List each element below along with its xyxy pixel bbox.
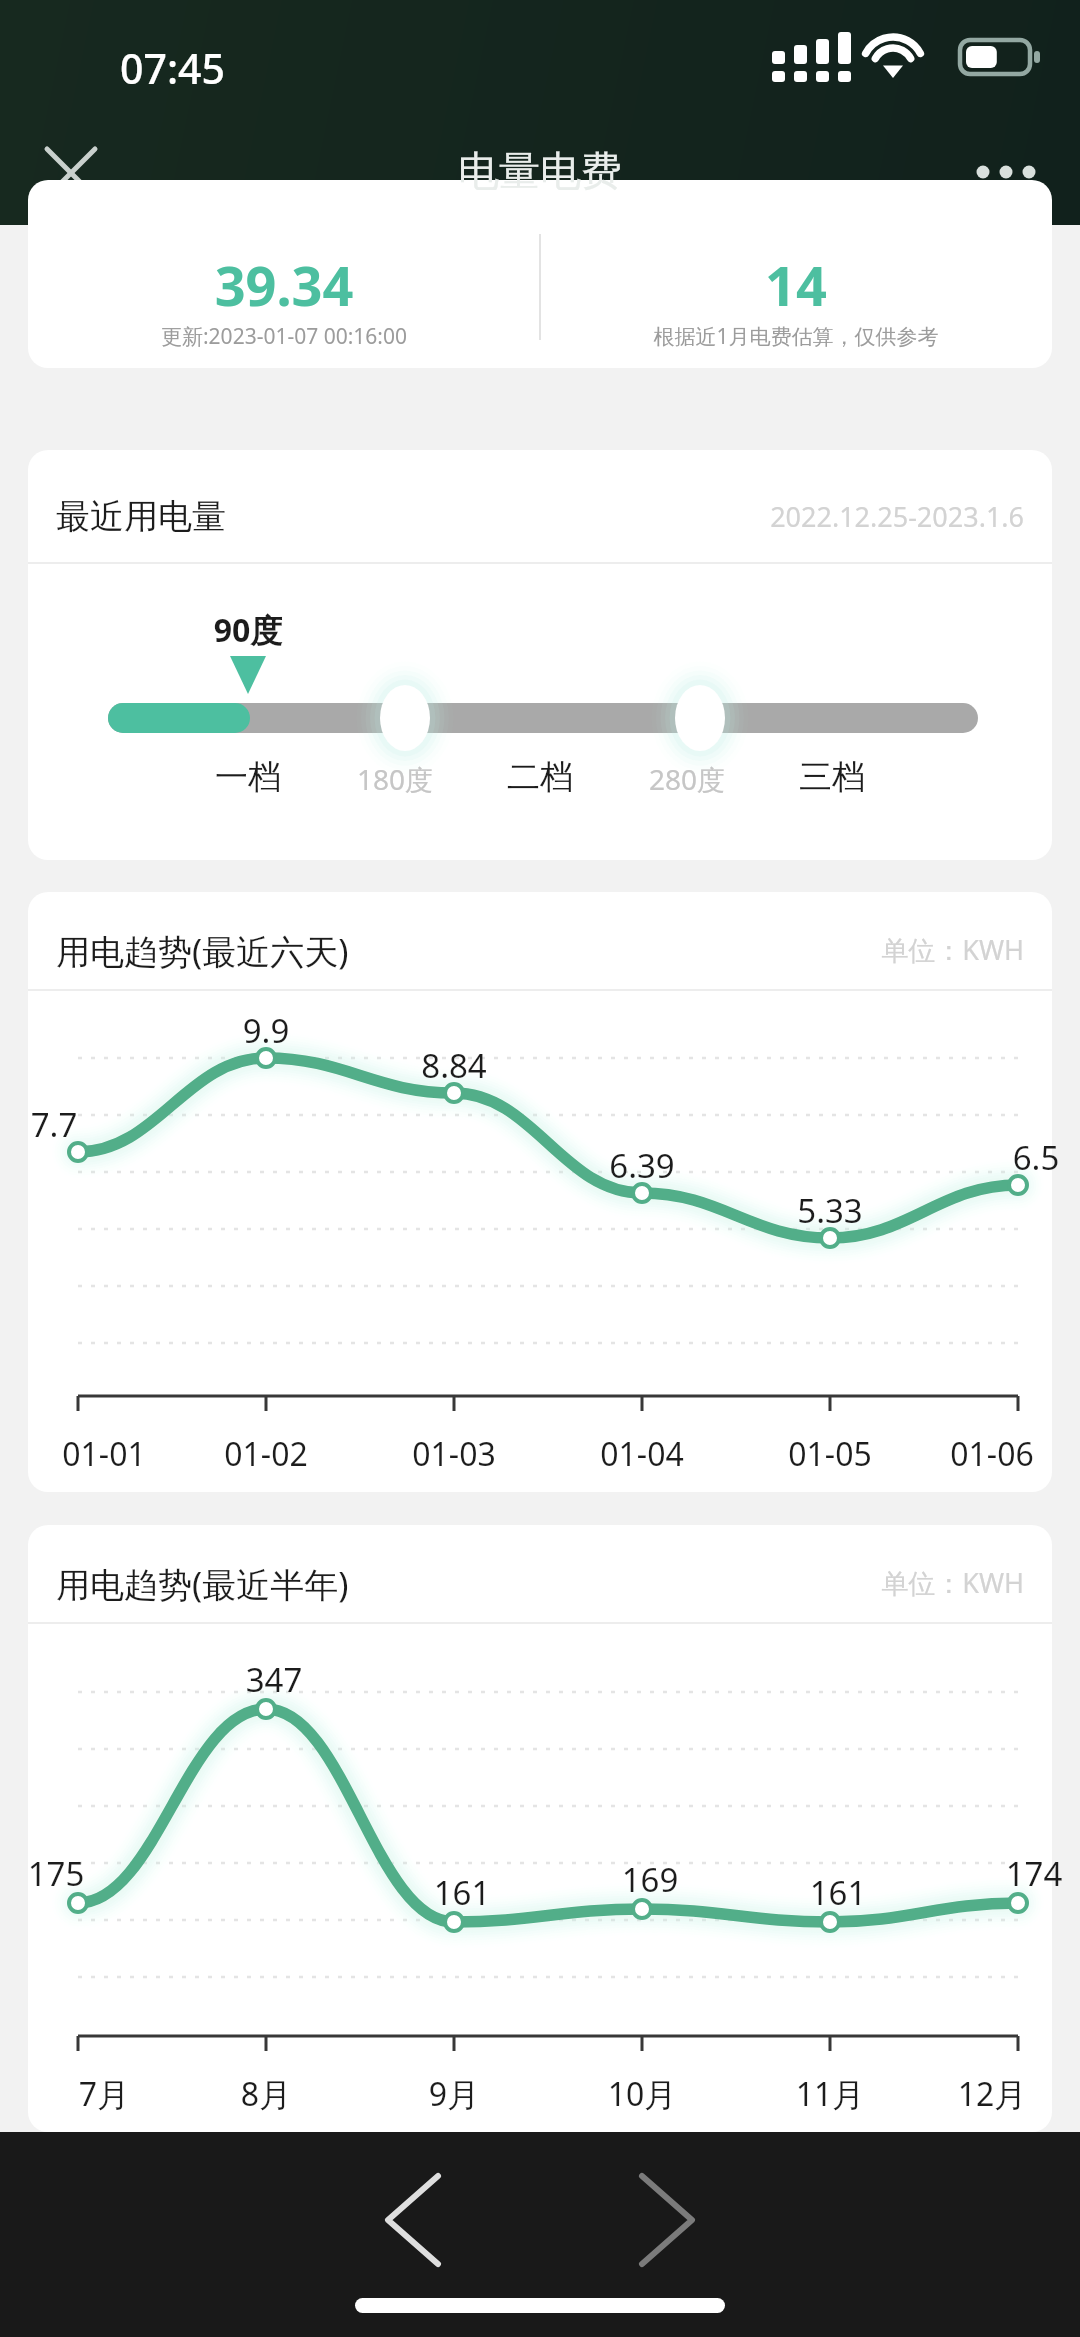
staticText: 01-01 bbox=[29, 1432, 179, 1476]
button[interactable] bbox=[540, 228, 1052, 368]
button[interactable] bbox=[28, 450, 1052, 860]
staticText: 二档 bbox=[470, 756, 610, 798]
staticText: 180度 bbox=[325, 760, 465, 798]
button[interactable]: More options bbox=[948, 138, 1062, 236]
staticText: 2022.12.25-2023.1.6 bbox=[0, 498, 1024, 535]
staticText: 9.9 bbox=[196, 1008, 336, 1053]
staticText: 8.84 bbox=[384, 1043, 524, 1088]
staticText: 根据近1月电费估算，仅供参考 bbox=[540, 322, 1052, 351]
staticText: 电量电费 bbox=[0, 146, 1080, 198]
staticText: 161 bbox=[768, 1870, 908, 1915]
staticText: 5.33 bbox=[760, 1188, 900, 1233]
staticText: 280度 bbox=[617, 760, 757, 798]
staticText: 90度 bbox=[178, 608, 318, 652]
staticText: 最近用电量 bbox=[56, 495, 226, 538]
staticText: 347 bbox=[204, 1657, 344, 1702]
staticText: 01-02 bbox=[191, 1432, 341, 1476]
staticText: 9月 bbox=[379, 2072, 529, 2116]
button[interactable]: Back bbox=[348, 2158, 478, 2282]
staticText: 三档 bbox=[762, 756, 902, 798]
staticText: 01-05 bbox=[755, 1432, 905, 1476]
staticText: 161 bbox=[392, 1870, 532, 1915]
staticText: 单位：KWH bbox=[0, 931, 1024, 968]
staticText: 01-04 bbox=[567, 1432, 717, 1476]
staticText: 01-06 bbox=[917, 1432, 1067, 1476]
staticText: 12月 bbox=[917, 2072, 1067, 2116]
staticText: 169 bbox=[580, 1857, 720, 1902]
staticText: 39.34 bbox=[28, 248, 540, 322]
button[interactable]: Close bbox=[18, 138, 124, 236]
staticText: 7.7 bbox=[0, 1102, 124, 1147]
staticText: 更新:2023-01-07 00:16:00 bbox=[28, 322, 540, 351]
staticText: 01-03 bbox=[379, 1432, 529, 1476]
staticText: 6.39 bbox=[572, 1143, 712, 1188]
staticText: 7月 bbox=[29, 2072, 179, 2116]
staticText: 11月 bbox=[755, 2072, 905, 2116]
staticText: 07:45 bbox=[120, 40, 225, 96]
staticText: 用电趋势(最近半年) bbox=[56, 1561, 349, 1607]
staticText: 175 bbox=[0, 1851, 126, 1896]
staticText: 174 bbox=[964, 1851, 1080, 1896]
staticText: 10月 bbox=[567, 2072, 717, 2116]
button[interactable] bbox=[28, 1525, 1052, 2132]
staticText: 6.5 bbox=[966, 1135, 1080, 1180]
button[interactable]: Forward bbox=[602, 2158, 732, 2282]
staticText: 单位：KWH bbox=[0, 1564, 1024, 1601]
staticText: 8月 bbox=[191, 2072, 341, 2116]
button[interactable] bbox=[28, 228, 540, 368]
staticText: 一档 bbox=[178, 756, 318, 798]
staticText: 14 bbox=[540, 248, 1052, 322]
button[interactable] bbox=[28, 892, 1052, 1492]
staticText: 用电趋势(最近六天) bbox=[56, 928, 349, 974]
